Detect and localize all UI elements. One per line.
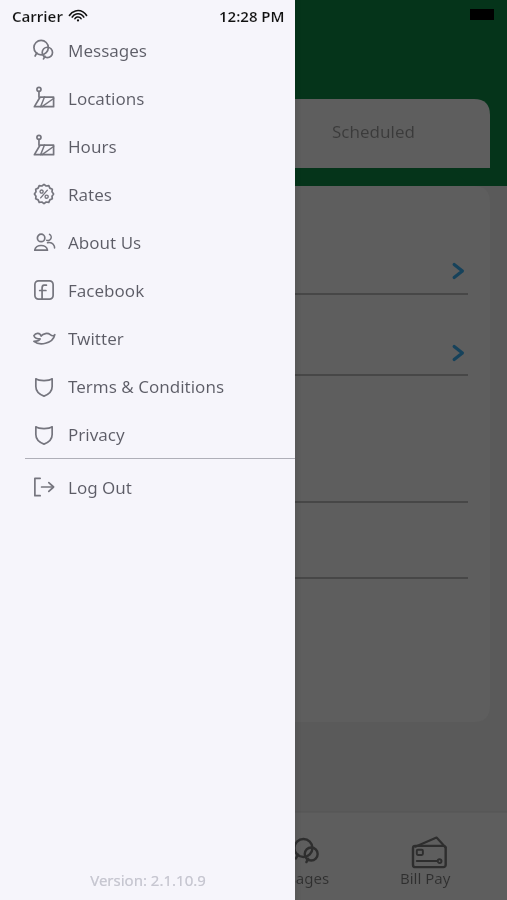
button[interactable]: Messages (0, 26, 295, 74)
staticText: Log Out (68, 476, 132, 499)
button[interactable]: Privacy (0, 410, 295, 458)
staticText: Terms & Conditions (68, 375, 225, 398)
staticText: Rates (68, 183, 112, 206)
button[interactable]: Terms & Conditions (0, 362, 295, 410)
staticText: 12:28 PM (219, 6, 285, 26)
staticText: Locations (68, 87, 145, 110)
button[interactable]: Facebook (0, 266, 295, 314)
staticText: Twitter (68, 327, 124, 350)
staticText: Messages (68, 39, 148, 62)
staticText: Privacy (68, 423, 125, 446)
staticText: Bill Pay (400, 868, 451, 888)
button[interactable]: Hours (0, 122, 295, 170)
button[interactable]: Twitter (0, 314, 295, 362)
staticText: Carrier (12, 6, 63, 26)
staticText: Version: 2.1.10.9 (90, 870, 206, 890)
staticText: Hours (68, 135, 117, 158)
button[interactable]: Log Out (0, 463, 295, 511)
button[interactable]: Locations (0, 74, 295, 122)
staticText: Facebook (68, 279, 145, 302)
staticText: essages (273, 868, 330, 888)
button[interactable]: Rates (0, 170, 295, 218)
staticText: Scheduled (332, 120, 415, 143)
button[interactable]: About Us (0, 218, 295, 266)
staticText: About Us (68, 231, 142, 254)
